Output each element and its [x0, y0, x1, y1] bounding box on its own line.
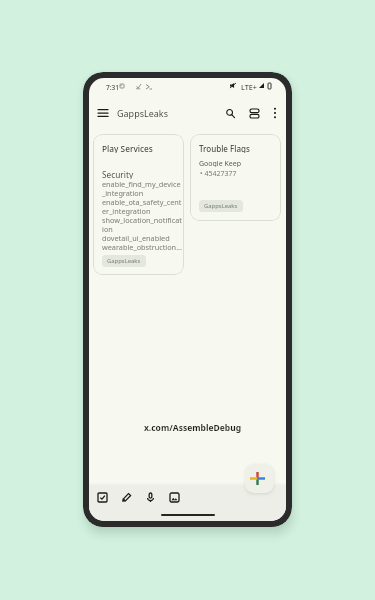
staticText: GappsLeaks	[117, 107, 168, 119]
staticText: LTE+	[241, 82, 257, 92]
staticText: enable_find_my_device _integration enabl…	[102, 179, 182, 252]
staticText: GappsLeaks	[107, 257, 141, 265]
button[interactable]: New image note	[163, 487, 185, 507]
staticText: 7:31	[106, 83, 120, 92]
button[interactable]: GappsLeaks	[102, 255, 146, 267]
staticText: Google Keep	[199, 159, 241, 167]
button[interactable]: More options	[266, 104, 284, 122]
button[interactable]: New list	[91, 487, 113, 507]
staticText: • 45427377	[200, 169, 237, 177]
staticText: Play Services	[102, 143, 153, 153]
button[interactable]: Play Services	[93, 134, 184, 275]
button[interactable]: Create new note	[245, 464, 274, 493]
button[interactable]: New drawing	[115, 487, 137, 507]
button[interactable]: Open navigation drawer	[93, 103, 113, 123]
button[interactable]: Toggle list view	[244, 103, 264, 123]
staticText: Trouble Flags	[199, 143, 250, 153]
button[interactable]: Trouble Flags	[190, 134, 281, 221]
staticText: GappsLeaks	[204, 202, 238, 210]
staticText: x.com/AssembleDebug	[94, 422, 286, 434]
staticText: Security	[102, 169, 134, 179]
button[interactable]: New voice note	[139, 487, 161, 507]
button[interactable]: Search	[220, 103, 240, 123]
button[interactable]: GappsLeaks	[199, 200, 243, 212]
